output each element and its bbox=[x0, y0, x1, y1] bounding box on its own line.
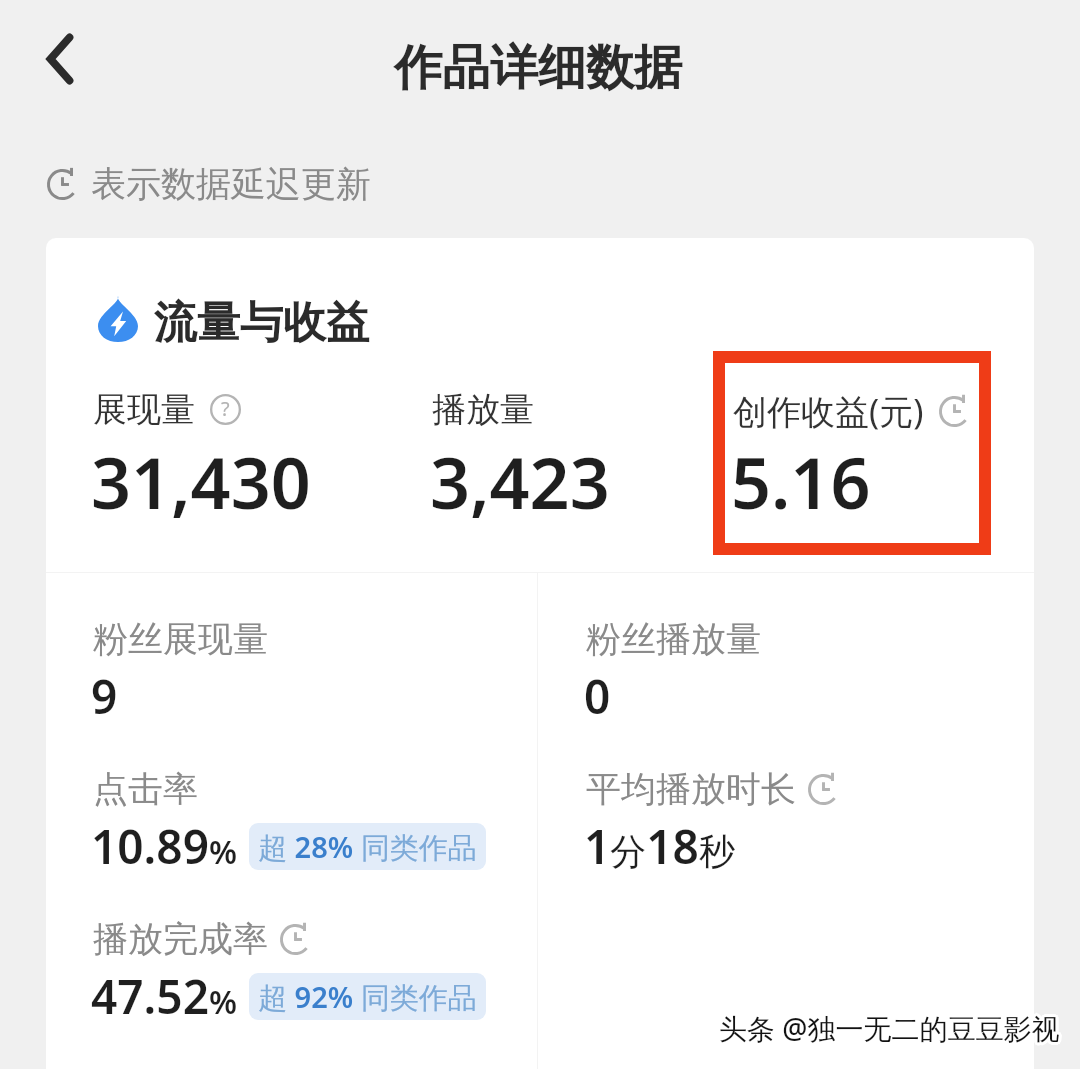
button[interactable]: 展现量 bbox=[89, 382, 424, 522]
staticText: 头条 @独一无二的豆豆影视 bbox=[721, 1011, 1062, 1049]
button[interactable]: 播放量 bbox=[428, 382, 725, 522]
staticText: 31,430 bbox=[91, 434, 311, 529]
staticText: 头条 @独一无二的豆豆影视 bbox=[719, 1008, 1060, 1046]
staticText: 头条 @独一无二的豆豆影视 bbox=[720, 1008, 1061, 1046]
staticText: 粉丝播放量 bbox=[586, 617, 761, 661]
button[interactable]: 超 28% 同类作品 bbox=[258, 823, 477, 870]
staticText: 3,423 bbox=[430, 434, 610, 529]
staticText: 头条 @独一无二的豆豆影视 bbox=[722, 1009, 1063, 1047]
button[interactable]: 超 92% 同类作品 bbox=[258, 973, 477, 1020]
staticText: 1分18秒 bbox=[584, 815, 735, 878]
staticText: 头条 @独一无二的豆豆影视 bbox=[717, 1011, 1058, 1049]
button[interactable]: Back bbox=[28, 22, 92, 96]
button[interactable]: 粉丝展现量 bbox=[89, 609, 529, 729]
staticText: 头条 @独一无二的豆豆影视 bbox=[721, 1008, 1062, 1046]
staticText: 点击率 bbox=[93, 767, 198, 811]
button[interactable]: 播放完成率 bbox=[89, 909, 529, 1029]
staticText: 展现量 bbox=[93, 388, 195, 431]
staticText: 头条 @独一无二的豆豆影视 bbox=[719, 1012, 1060, 1050]
staticText: 头条 @独一无二的豆豆影视 bbox=[718, 1009, 1059, 1047]
staticText: 流量与收益 bbox=[154, 296, 369, 350]
staticText: ? bbox=[221, 395, 230, 422]
staticText: 播放完成率 bbox=[93, 917, 268, 961]
staticText: 头条 @独一无二的豆豆影视 bbox=[720, 1010, 1061, 1048]
staticText: 头条 @独一无二的豆豆影视 bbox=[721, 1007, 1062, 1045]
staticText: 头条 @独一无二的豆豆影视 bbox=[720, 1007, 1061, 1045]
staticText: 头条 @独一无二的豆豆影视 bbox=[721, 1009, 1062, 1047]
staticText: 播放量 bbox=[432, 388, 534, 431]
staticText: 头条 @独一无二的豆豆影视 bbox=[716, 1009, 1057, 1047]
staticText: 头条 @独一无二的豆豆影视 bbox=[717, 1010, 1058, 1048]
staticText: 头条 @独一无二的豆豆影视 bbox=[718, 1011, 1059, 1049]
staticText: 头条 @独一无二的豆豆影视 bbox=[718, 1008, 1059, 1046]
staticText: 头条 @独一无二的豆豆影视 bbox=[717, 1008, 1058, 1046]
staticText: 创作收益(元) bbox=[733, 388, 924, 434]
button[interactable]: 粉丝播放量 bbox=[582, 609, 982, 729]
button[interactable]: 流量与收益 bbox=[92, 290, 378, 348]
staticText: 表示数据延迟更新 bbox=[91, 162, 371, 206]
staticText: 粉丝展现量 bbox=[93, 617, 268, 661]
staticText: 头条 @独一无二的豆豆影视 bbox=[721, 1010, 1062, 1048]
staticText: 头条 @独一无二的豆豆影视 bbox=[717, 1009, 1058, 1047]
button[interactable]: 平均播放时长 bbox=[582, 759, 982, 879]
button[interactable]: 创作收益(元) bbox=[729, 382, 984, 522]
button[interactable]: 点击率 bbox=[89, 759, 529, 879]
staticText: 头条 @独一无二的豆豆影视 bbox=[720, 1011, 1061, 1049]
staticText: 超 28% 同类作品 bbox=[258, 827, 477, 867]
staticText: 头条 @独一无二的豆豆影视 bbox=[719, 1011, 1060, 1049]
staticText: 作品详细数据 bbox=[394, 38, 682, 98]
staticText: 头条 @独一无二的豆豆影视 bbox=[719, 1006, 1060, 1044]
staticText: 10.89% bbox=[91, 815, 237, 878]
staticText: 平均播放时长 bbox=[586, 767, 796, 811]
staticText: 头条 @独一无二的豆豆影视 bbox=[719, 1007, 1060, 1045]
staticText: 47.52% bbox=[91, 965, 237, 1028]
staticText: 5.16 bbox=[731, 434, 871, 529]
staticText: 头条 @独一无二的豆豆影视 bbox=[717, 1007, 1058, 1045]
staticText: 头条 @独一无二的豆豆影视 bbox=[719, 1010, 1060, 1048]
staticText: 9 bbox=[91, 665, 118, 728]
staticText: 头条 @独一无二的豆豆影视 bbox=[718, 1007, 1059, 1045]
staticText: 头条 @独一无二的豆豆影视 bbox=[720, 1009, 1061, 1047]
staticText: 超 92% 同类作品 bbox=[258, 977, 477, 1017]
staticText: 0 bbox=[584, 665, 611, 728]
staticText: 头条 @独一无二的豆豆影视 bbox=[719, 1009, 1060, 1047]
staticText: 头条 @独一无二的豆豆影视 bbox=[718, 1010, 1059, 1048]
